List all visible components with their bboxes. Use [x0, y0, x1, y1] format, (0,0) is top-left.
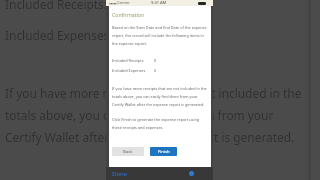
button[interactable]: Chrome — [189, 171, 194, 176]
staticText: 9:41 AM — [151, 0, 167, 5]
staticText: Certify Wallet after the expense report … — [5, 129, 295, 145]
button[interactable]: Back — [112, 147, 144, 156]
staticText: Based on the Start Date and End Date of … — [112, 25, 210, 46]
staticText: Finish — [158, 149, 170, 155]
staticText: Carrier — [117, 0, 131, 5]
staticText: Included Expenses — [5, 27, 110, 43]
staticText: Included Expenses — [112, 68, 146, 73]
staticText: 0 — [154, 58, 157, 63]
staticText: Included Receipts: — [5, 0, 107, 12]
staticText: Confirmation — [112, 11, 145, 18]
staticText: Back — [123, 149, 133, 155]
button[interactable]: Done — [112, 170, 128, 178]
button[interactable]: Finish — [150, 147, 177, 156]
staticText: 0 — [154, 68, 157, 73]
button[interactable]: Included Expenses — [112, 68, 157, 73]
button[interactable]: Included Receipts — [112, 58, 157, 63]
staticText: Click Finish to generate the expense rep… — [112, 117, 210, 130]
staticText: Included Receipts — [112, 58, 144, 63]
staticText: If you have more receipts that are not i… — [5, 85, 302, 101]
staticText: totals above, you can easily find them f… — [5, 107, 274, 123]
staticText: If you have more receipts that are not i… — [112, 86, 210, 107]
